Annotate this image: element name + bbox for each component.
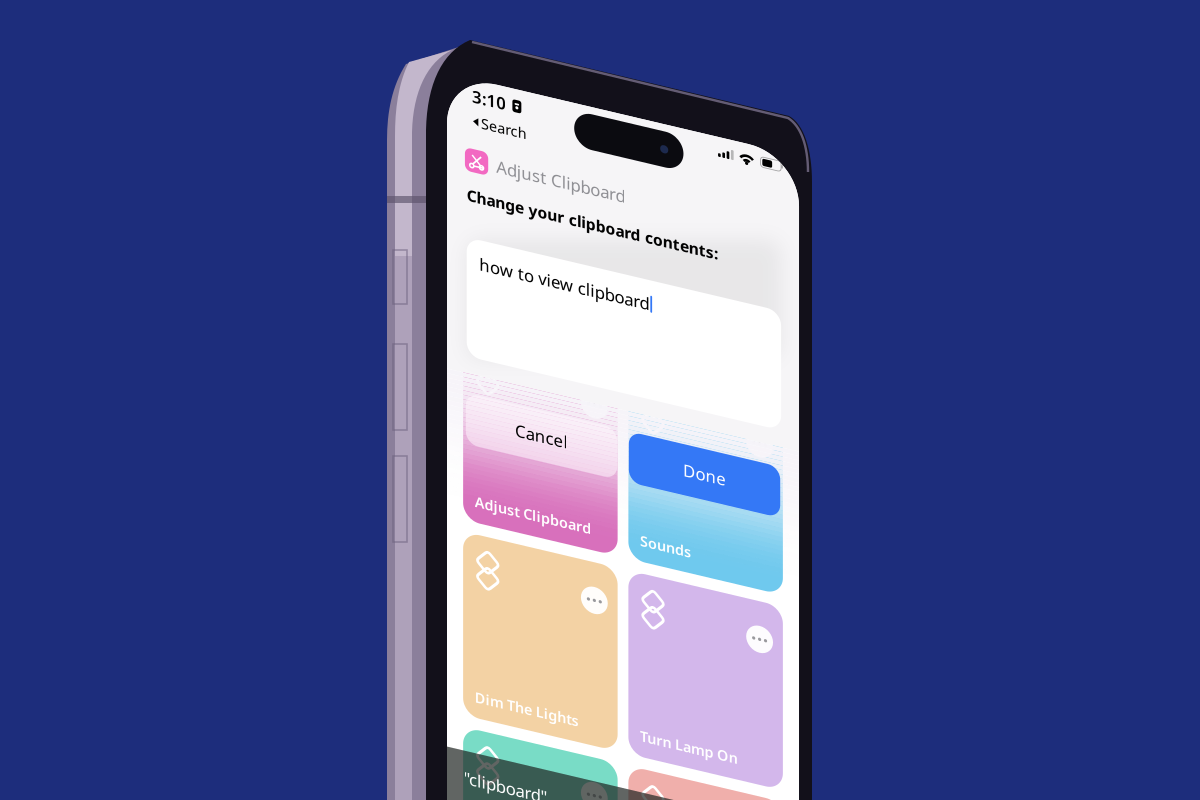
- button[interactable]: clip: [262, 755, 393, 800]
